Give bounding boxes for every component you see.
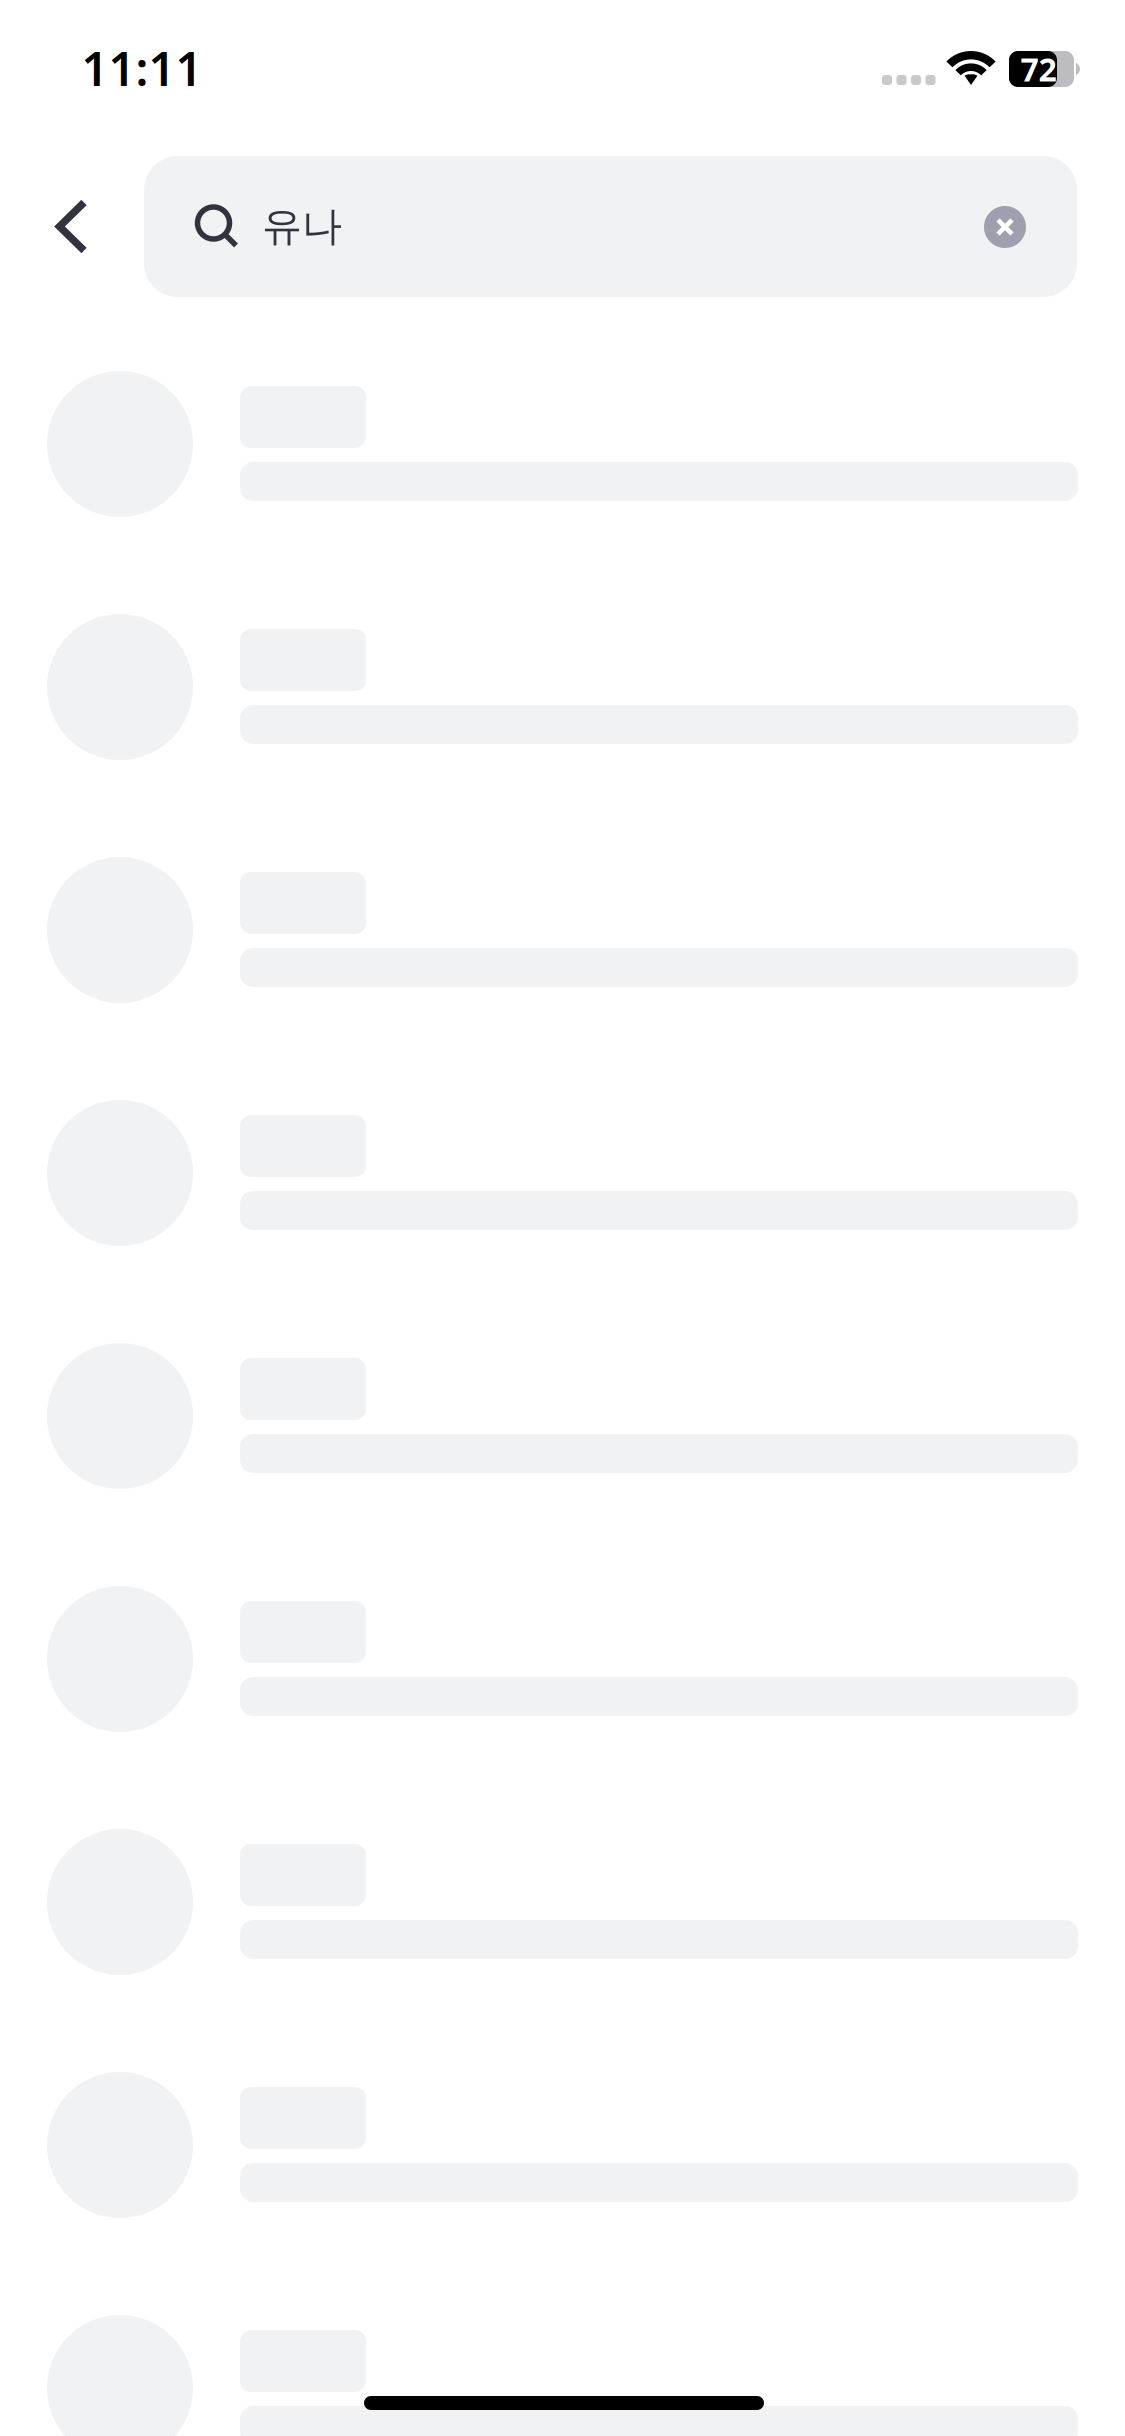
button[interactable] [0, 857, 1125, 1003]
button[interactable]: Back [0, 156, 144, 297]
button[interactable] [0, 1100, 1125, 1246]
button[interactable] [0, 371, 1125, 517]
button[interactable] [0, 1586, 1125, 1732]
button[interactable] [0, 1829, 1125, 1975]
button[interactable]: Clear search [951, 173, 1059, 281]
button[interactable] [0, 2315, 1125, 2436]
button[interactable] [0, 614, 1125, 760]
staticText: 11:11 [81, 37, 202, 99]
button[interactable] [0, 2072, 1125, 2218]
button[interactable] [0, 1343, 1125, 1489]
button[interactable]: 유나 [144, 156, 1077, 297]
staticText: 유나 [262, 202, 342, 251]
staticText: 72 [1020, 48, 1056, 90]
